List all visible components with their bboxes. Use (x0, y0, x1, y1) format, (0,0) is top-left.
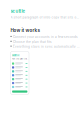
staticText: A short paragraph of intro copy that sit… (10, 16, 80, 19)
staticText: Everything stays in sync automatically h… (13, 45, 80, 48)
staticText: Pick the plan that works for you (12, 58, 29, 60)
staticText: scuttle (10, 8, 25, 14)
button[interactable]: Plan option (10, 77, 29, 81)
button[interactable]: Plan option (10, 81, 29, 85)
staticText: Choose the plan that fits (13, 40, 52, 43)
button[interactable] (12, 90, 27, 93)
staticText: How it works (10, 28, 40, 33)
button[interactable]: Plan option (10, 85, 29, 89)
button[interactable]: Plan option (10, 73, 29, 77)
button[interactable]: Plan option (10, 65, 29, 69)
button[interactable]: Plan option (10, 62, 29, 65)
button[interactable]: Plan option (10, 69, 29, 73)
staticText: Connect your accounts in a few seconds (13, 35, 78, 39)
staticText: scuttle (12, 54, 19, 57)
